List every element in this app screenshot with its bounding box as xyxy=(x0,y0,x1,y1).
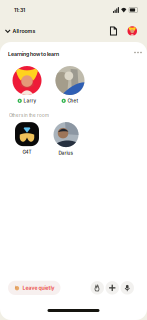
button[interactable]: Room options xyxy=(131,46,145,59)
staticText: Leave quietly xyxy=(22,285,54,291)
button[interactable]: Darius xyxy=(50,122,82,156)
staticText: Darius xyxy=(58,150,73,156)
staticText: Others in the room xyxy=(9,113,49,118)
button[interactable]: Larry xyxy=(11,66,43,104)
staticText: All rooms xyxy=(12,28,35,34)
staticText: Learning how to learn xyxy=(8,51,59,57)
button[interactable]: Leave quietly xyxy=(8,281,60,295)
staticText: Larry xyxy=(23,98,36,104)
button[interactable]: Raise hand xyxy=(90,281,104,295)
button[interactable]: All rooms xyxy=(4,24,36,38)
button[interactable]: Room notes xyxy=(101,23,121,38)
button[interactable]: Mute microphone xyxy=(120,281,134,295)
staticText: Chet xyxy=(67,98,78,104)
button[interactable]: Your profile xyxy=(125,24,139,38)
button[interactable]: Invite people xyxy=(105,281,119,295)
staticText: G4T xyxy=(22,149,31,155)
button[interactable]: G4T xyxy=(11,122,43,155)
staticText: 11:31 xyxy=(14,7,25,13)
button[interactable]: Chet xyxy=(54,66,86,104)
